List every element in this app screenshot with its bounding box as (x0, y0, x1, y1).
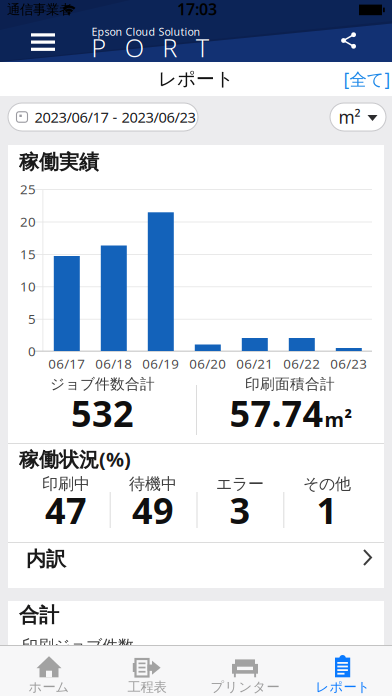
staticText: 2023/06/17 - 2023/06/23 (34, 107, 195, 127)
staticText: 印刷面積合計 (245, 375, 335, 393)
staticText: 5 (28, 310, 36, 328)
staticText: 06/19 (142, 355, 179, 372)
staticText: ジョブ件数合計 (50, 375, 155, 393)
staticText: 20 (20, 213, 36, 230)
staticText: 印刷ジョブ件数 (22, 636, 134, 656)
staticText: 47 (45, 486, 87, 534)
staticText: 通信事業者 (7, 1, 72, 18)
staticText: 稼働実績 (19, 150, 99, 174)
staticText: 工程表 (127, 679, 166, 695)
staticText: 06/17 (48, 355, 85, 372)
staticText: 17:03 (177, 0, 217, 20)
staticText: 15 (20, 245, 36, 263)
button[interactable]: レポート (294, 645, 392, 696)
staticText: 印刷中 (42, 474, 90, 494)
staticText: その他 (303, 474, 351, 494)
button[interactable]: 単位 (330, 103, 386, 131)
staticText: PORT (91, 31, 209, 64)
staticText: 合計 (19, 603, 59, 627)
button[interactable]: ホーム (0, 645, 98, 696)
button[interactable]: 内訳 (8, 542, 384, 588)
staticText: 待機中 (129, 474, 177, 494)
staticText: エラー (216, 474, 264, 494)
button[interactable]: プリンター (196, 645, 294, 696)
staticText: 06/23 (330, 355, 367, 372)
staticText: m² (324, 406, 352, 432)
staticText: 532 (71, 389, 134, 437)
staticText: ホーム (28, 679, 69, 695)
button[interactable]: 期間 (8, 103, 198, 131)
button[interactable]: 工程表 (98, 645, 196, 696)
button[interactable]: [全て] (337, 64, 392, 94)
staticText: プリンター (210, 679, 279, 695)
staticText: 06/18 (95, 355, 132, 372)
staticText: 1 (316, 486, 337, 534)
button[interactable]: メニュー (21, 20, 65, 60)
staticText: 49 (132, 486, 174, 534)
staticText: m² (338, 105, 360, 128)
staticText: 06/22 (283, 355, 320, 372)
staticText: 06/21 (236, 355, 273, 372)
staticText: 06/20 (189, 355, 226, 372)
staticText: Epson Cloud Solution (91, 24, 200, 39)
staticText: 25 (20, 180, 36, 198)
staticText: 内訳 (26, 547, 66, 571)
staticText: 3 (229, 486, 250, 534)
staticText: レポート (158, 67, 234, 90)
button[interactable]: 共有 (327, 20, 371, 60)
staticText: レポート (315, 679, 370, 695)
staticText: 57.74 (229, 389, 323, 437)
staticText: [全て] (343, 67, 390, 90)
staticText: 0 (28, 342, 36, 360)
staticText: 10 (20, 277, 36, 295)
staticText: 稼働状況(%) (19, 446, 131, 472)
